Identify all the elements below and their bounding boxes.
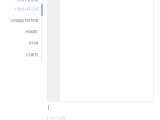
- button[interactable]: Pivot: [0, 38, 38, 49]
- staticText: Header: [25, 29, 38, 34]
- staticText: Display Format: [11, 18, 38, 23]
- button[interactable]: Display Format: [0, 15, 38, 26]
- staticText: Cell Format: [17, 0, 38, 2]
- button[interactable]: Header: [0, 26, 38, 38]
- button[interactable]: Value Format: [0, 3, 38, 15]
- staticText: Charts: [26, 52, 38, 57]
- staticText: Pivot: [29, 41, 38, 46]
- button[interactable]: Charts: [0, 49, 38, 60]
- staticText: Formats: [47, 115, 65, 120]
- staticText: Value Format: [14, 7, 38, 11]
